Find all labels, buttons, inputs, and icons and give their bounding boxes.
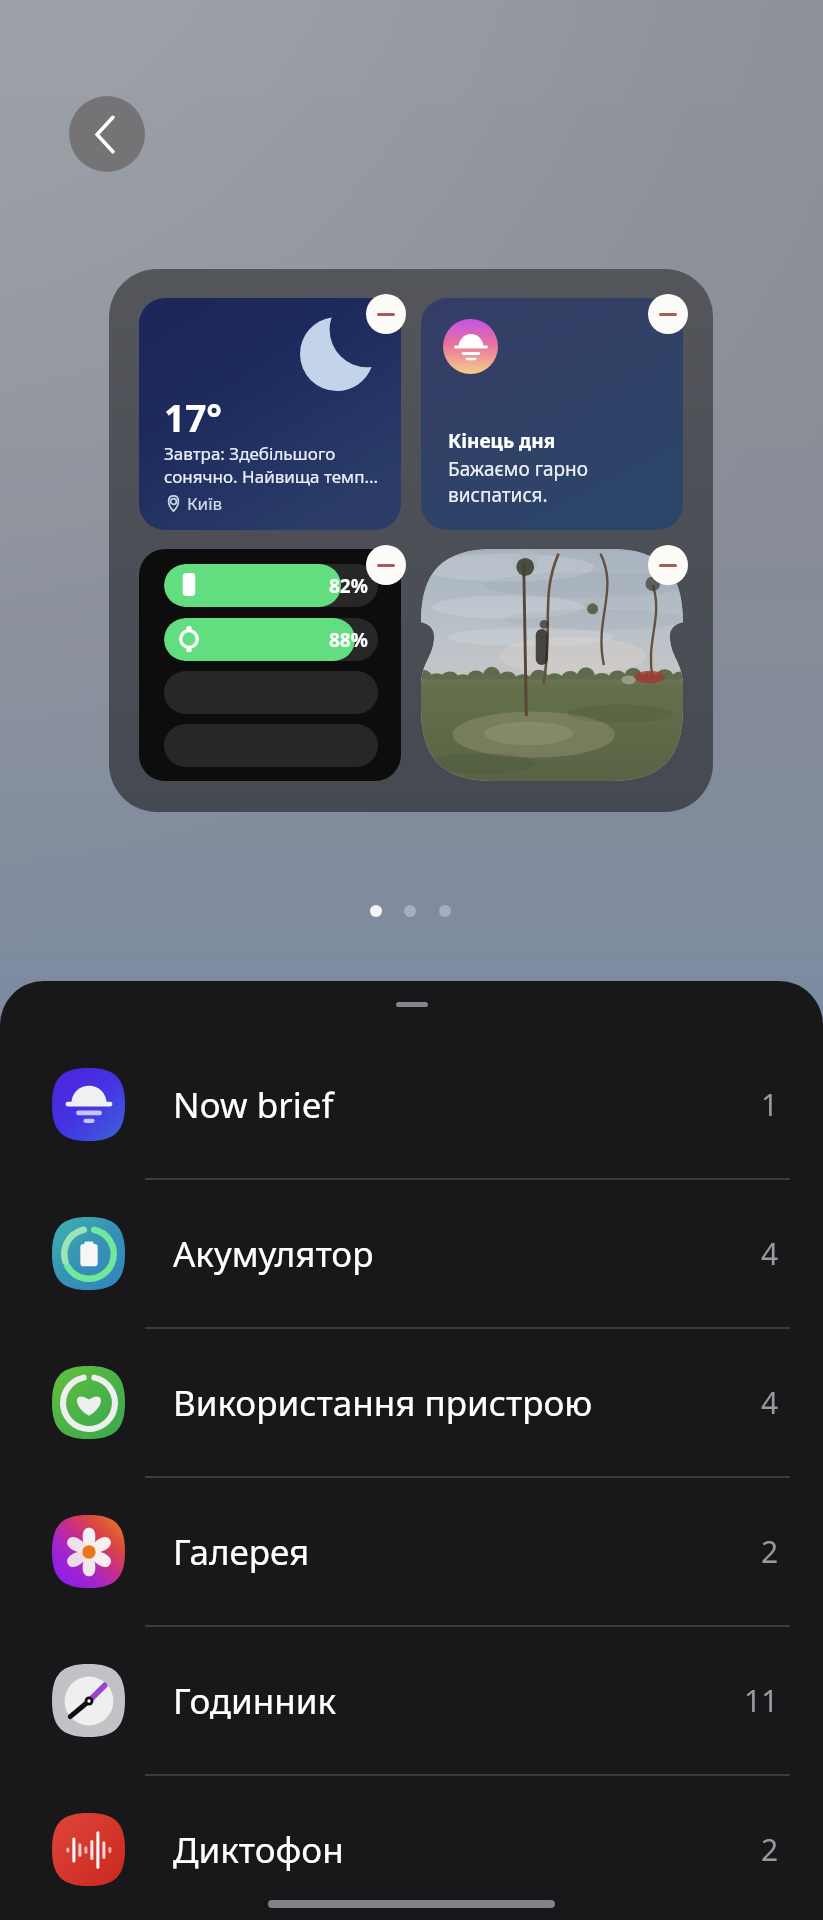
staticText: 82%	[329, 573, 368, 599]
staticText: 4	[761, 1233, 779, 1274]
staticText: Використання пристрою	[173, 1379, 593, 1427]
staticText: 2	[761, 1829, 779, 1870]
staticText: Кінець дня	[448, 428, 556, 454]
button[interactable]: Now brief	[0, 1031, 823, 1178]
staticText: Галерея	[173, 1528, 310, 1576]
staticText: 1	[761, 1084, 779, 1125]
staticText: Бажаємо гарно виспатися.	[448, 456, 668, 508]
button[interactable]: Back	[69, 96, 145, 172]
staticText: Київ	[187, 492, 223, 515]
staticText: Годинник	[173, 1677, 337, 1725]
button[interactable]: Remove widget	[366, 545, 406, 585]
staticText: 2	[761, 1531, 779, 1572]
button[interactable]: Використання пристрою	[0, 1329, 823, 1476]
button[interactable]: Remove widget	[366, 294, 406, 334]
button[interactable]: Годинник	[0, 1627, 823, 1774]
staticText: 11	[744, 1680, 779, 1721]
button[interactable]: Галерея	[0, 1478, 823, 1625]
button[interactable]: Remove widget	[648, 294, 688, 334]
staticText: Now brief	[173, 1081, 334, 1129]
staticText: 17°	[164, 392, 223, 442]
button[interactable]: Remove widget	[648, 545, 688, 585]
staticText: Акумулятор	[173, 1230, 374, 1278]
button[interactable]: Акумулятор	[0, 1180, 823, 1327]
staticText: Диктофон	[173, 1826, 344, 1874]
staticText: 88%	[329, 627, 368, 653]
staticText: Завтра: Здебільшого сонячно. Найвища тем…	[164, 442, 401, 488]
staticText: 4	[761, 1382, 779, 1423]
button[interactable]: Диктофон	[0, 1776, 823, 1920]
